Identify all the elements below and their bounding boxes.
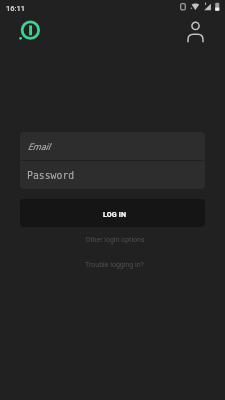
button[interactable]: Password	[20, 161, 205, 189]
staticText: 16:11	[6, 4, 26, 13]
button[interactable]: Trouble logging in?	[2, 257, 225, 272]
button[interactable]: App logo	[17, 17, 44, 44]
button[interactable]: LOG IN	[20, 199, 205, 227]
staticText: Email	[28, 141, 51, 152]
staticText: Password	[27, 170, 75, 181]
staticText: LOG IN	[103, 210, 127, 218]
staticText: Other login options	[85, 236, 145, 244]
button[interactable]: Profile	[185, 18, 206, 39]
button[interactable]: Other login options	[2, 232, 225, 247]
staticText: Trouble logging in?	[85, 261, 144, 269]
button[interactable]: Email	[20, 132, 205, 160]
